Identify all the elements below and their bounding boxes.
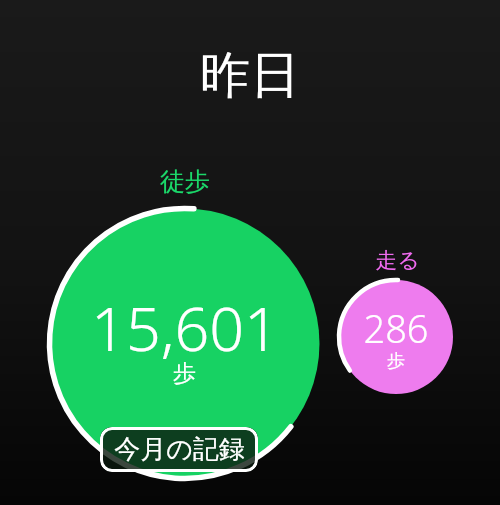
staticText: 歩 [173,359,196,388]
staticText: 今月の記録 [114,433,245,466]
staticText: 昨日 [200,44,300,107]
button[interactable]: 今月の記録 [100,427,258,472]
staticText: 徒歩 [160,166,210,197]
button[interactable]: 徒歩 15,601 歩 [46,205,323,482]
button[interactable]: 走る 286 歩 [336,277,456,397]
staticText: 歩 [387,350,405,373]
staticText: 走る [375,247,420,275]
staticText: 15,601 [91,286,279,369]
staticText: 286 [363,302,429,354]
